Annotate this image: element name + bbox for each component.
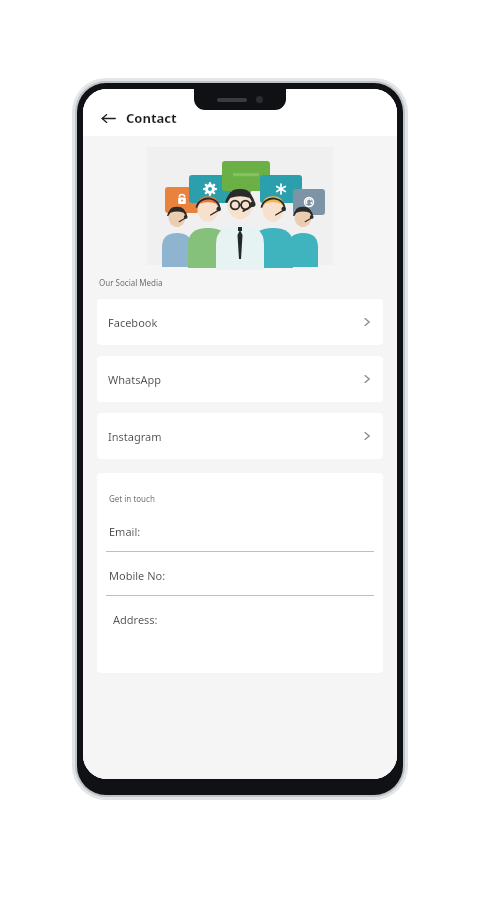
staticText: Instagram (108, 429, 362, 444)
button[interactable]: Facebook (97, 299, 383, 345)
staticText: Mobile No: (109, 568, 166, 583)
button[interactable]: WhatsApp (97, 356, 383, 402)
button[interactable]: Back (98, 108, 118, 128)
staticText: Facebook (108, 315, 362, 330)
staticText: Address: (113, 612, 158, 627)
staticText: Get in touch (109, 493, 155, 504)
staticText: Our Social Media (99, 277, 163, 288)
button[interactable]: Instagram (97, 413, 383, 459)
staticText: Contact (126, 109, 177, 127)
staticText: WhatsApp (108, 372, 362, 387)
staticText: Email: (109, 524, 141, 539)
